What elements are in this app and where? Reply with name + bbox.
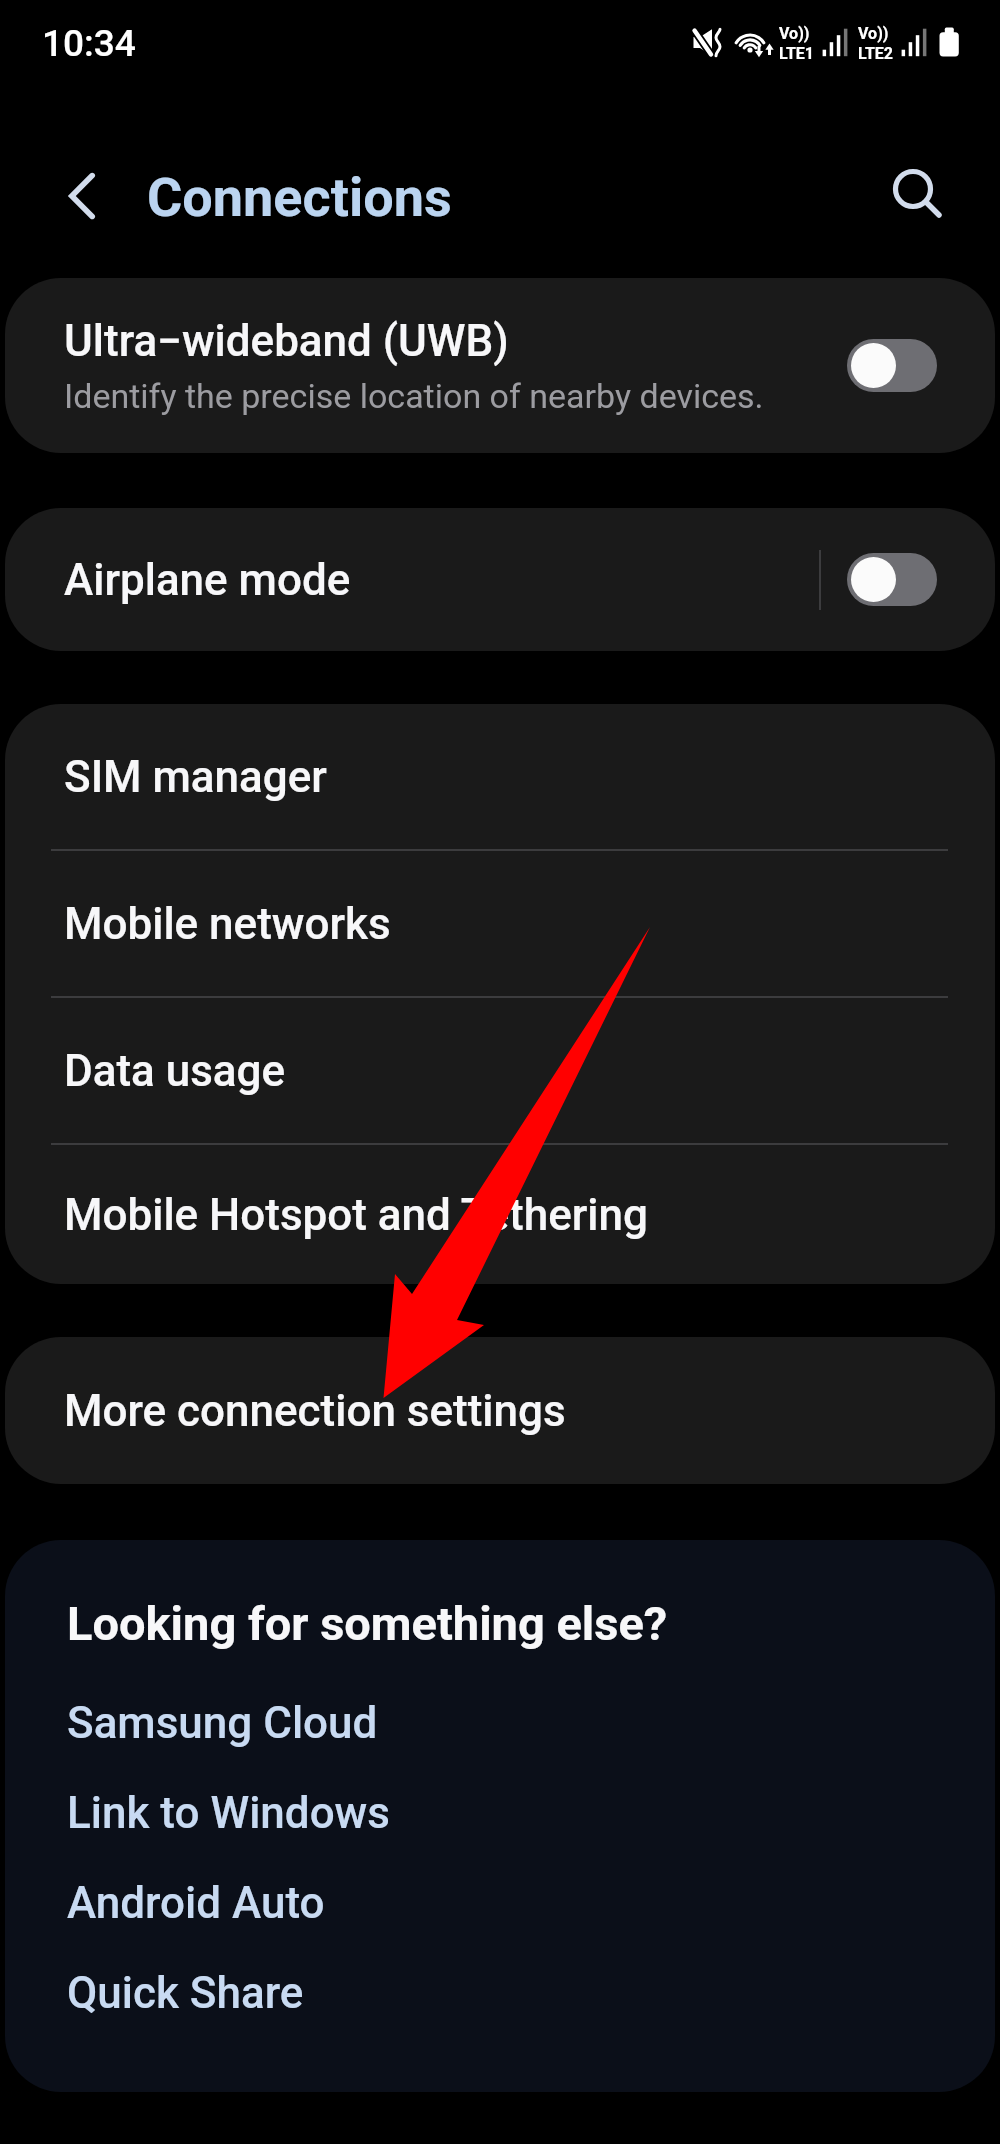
button[interactable]: SIM manager	[5, 704, 995, 849]
staticText: Samsung Cloud	[67, 1697, 378, 1749]
button[interactable]: Toggle switch	[847, 339, 937, 392]
button[interactable]: Android Auto	[67, 1858, 995, 1948]
staticText: Vo))	[858, 24, 889, 43]
staticText: Mobile Hotspot and Tethering	[64, 1189, 648, 1241]
button[interactable]: More connection settings	[5, 1337, 995, 1484]
staticText: More connection settings	[64, 1385, 566, 1437]
staticText: Identify the precise location of nearby …	[64, 376, 764, 416]
button[interactable]: Quick Share	[67, 1948, 995, 2038]
staticText: Ultra−wideband (UWB)	[64, 315, 509, 367]
staticText: Android Auto	[67, 1877, 325, 1929]
button[interactable]: Mobile Hotspot and Tethering	[5, 1145, 995, 1284]
button[interactable]: Data usage	[5, 998, 995, 1143]
button[interactable]: Link to Windows	[67, 1768, 995, 1858]
staticText: SIM manager	[64, 751, 327, 803]
staticText: Looking for something else?	[67, 1596, 668, 1651]
staticText: LTE1	[779, 44, 814, 63]
staticText: Airplane mode	[64, 554, 819, 606]
staticText: 10:34	[42, 22, 136, 65]
staticText: LTE2	[858, 44, 893, 63]
staticText: Vo))	[779, 24, 810, 43]
button[interactable]: Toggle switch	[847, 553, 937, 606]
staticText: Link to Windows	[67, 1787, 390, 1839]
button[interactable]: Airplane mode	[5, 508, 995, 651]
button[interactable]: Search	[868, 146, 958, 236]
button[interactable]: Mobile networks	[5, 851, 995, 996]
button[interactable]: Ultra−wideband (UWB)	[5, 278, 995, 453]
staticText: Connections	[147, 166, 452, 229]
button[interactable]: Navigate up	[37, 151, 127, 241]
staticText: Quick Share	[67, 1967, 304, 2019]
staticText: Data usage	[64, 1045, 286, 1097]
staticText: Mobile networks	[64, 898, 391, 950]
button[interactable]: Samsung Cloud	[67, 1678, 995, 1768]
